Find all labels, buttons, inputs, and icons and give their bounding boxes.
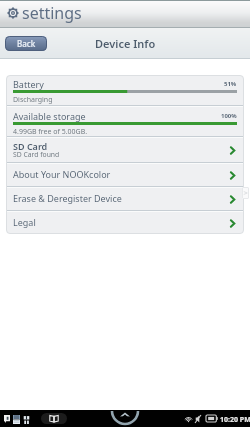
staticText: Device Info	[95, 36, 156, 51]
button[interactable]: Notifications	[4, 415, 10, 423]
button[interactable]: Home	[112, 410, 138, 424]
staticText: About Your NOOKcolor	[13, 168, 111, 180]
staticText: 51%	[224, 80, 237, 88]
button[interactable]: Battery	[6, 75, 244, 105]
staticText: Legal	[13, 216, 36, 228]
button[interactable]: Legal	[6, 212, 244, 234]
staticText: Battery	[13, 78, 44, 90]
button[interactable]: Available storage	[6, 107, 244, 136]
button[interactable]: Library	[13, 415, 20, 424]
button[interactable]: Shop	[23, 415, 30, 424]
button[interactable]: About Your NOOKcolor	[6, 164, 244, 186]
staticText: 10:20 PM	[220, 415, 250, 425]
staticText: Back	[17, 38, 36, 49]
staticText: settings	[22, 2, 82, 24]
staticText: Erase & Deregister Device	[13, 192, 122, 204]
staticText: Available storage	[13, 110, 86, 122]
staticText: SD Card	[13, 140, 48, 152]
button[interactable]: SD Card	[6, 138, 244, 162]
button[interactable]: Erase & Deregister Device	[6, 188, 244, 210]
staticText: 100%	[221, 112, 237, 120]
staticText: Discharging	[13, 95, 53, 105]
button[interactable]: Reading now	[41, 413, 67, 424]
staticText: SD Card found	[13, 150, 60, 159]
staticText: 4.99GB free of 5.00GB.	[13, 127, 88, 137]
button[interactable]: Back	[5, 36, 47, 51]
